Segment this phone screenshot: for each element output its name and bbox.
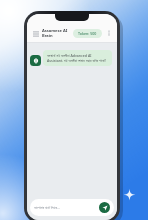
staticText: Assamese AI Brain (42, 28, 68, 38)
button[interactable]: আপোনাৰ বাৰ্তা লিখক... (34, 205, 96, 210)
button[interactable]: Token: 500 (73, 29, 102, 38)
staticText: নমস্কাৰ! মই অসমীয়া Advanced AI Assistan… (47, 53, 108, 63)
button[interactable]: More options (105, 29, 113, 37)
staticText: Token: 500 (78, 31, 97, 36)
staticText: আপোনাৰ বাৰ্তা লিখক... (34, 205, 60, 210)
button[interactable]: Menu (31, 29, 40, 38)
button[interactable]: নমস্কাৰ! মই অসমীয়া Advanced AI Assistan… (43, 50, 112, 66)
button[interactable]: Send (99, 202, 110, 213)
